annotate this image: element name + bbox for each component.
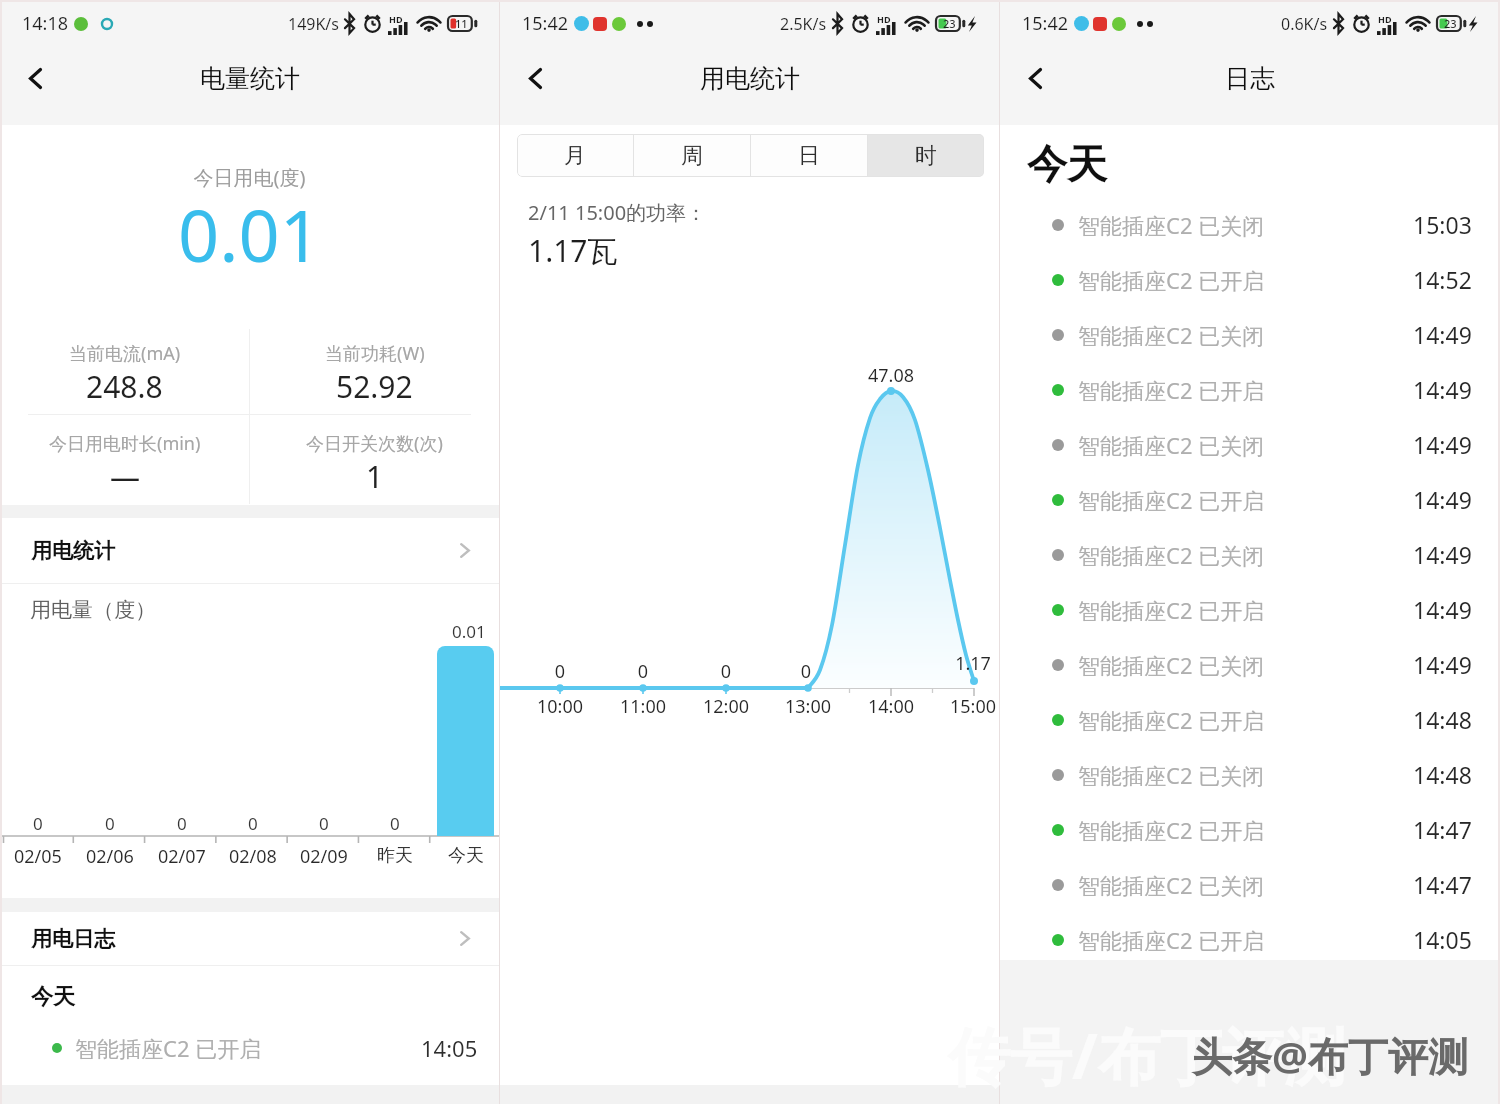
staticText: 0: [390, 812, 400, 835]
staticText: 15:03: [1413, 209, 1472, 240]
button[interactable]: 用电统计: [0, 518, 499, 583]
staticText: HD: [389, 13, 403, 25]
button[interactable]: 智能插座C2 已关闭: [1000, 417, 1500, 472]
staticText: 14:49: [1413, 649, 1472, 680]
button[interactable]: 智能插座C2 已开启: [1000, 912, 1500, 967]
staticText: 智能插座C2 已关闭: [1078, 210, 1265, 240]
staticText: 今日用电时长(min): [49, 431, 201, 456]
staticText: 今日用电(度): [0, 164, 499, 191]
staticText: 月: [564, 142, 586, 170]
staticText: 14:05: [421, 1033, 478, 1063]
button[interactable]: 用电日志: [0, 912, 499, 965]
staticText: 23: [1444, 16, 1457, 31]
button[interactable]: 智能插座C2 已关闭: [1000, 637, 1500, 692]
staticText: 智能插座C2 已关闭: [1078, 430, 1265, 460]
staticText: 今天: [1027, 139, 1107, 189]
button[interactable]: 智能插座C2 已开启: [1000, 802, 1500, 857]
staticText: 14:48: [1413, 704, 1472, 735]
staticText: 智能插座C2 已关闭: [1078, 540, 1265, 570]
staticText: 智能插座C2 已关闭: [1078, 760, 1265, 790]
staticText: 1.17: [923, 651, 1023, 676]
staticText: 12:00: [676, 694, 776, 719]
staticText: 0: [756, 659, 856, 684]
staticText: 02/06: [86, 844, 134, 869]
button[interactable]: 智能插座C2 已开启: [1000, 362, 1500, 417]
staticText: 14:49: [1413, 539, 1472, 570]
staticText: 昨天: [377, 844, 413, 867]
staticText: 14:49: [1413, 594, 1472, 625]
staticText: 1: [366, 456, 384, 497]
button[interactable]: 时: [868, 134, 984, 177]
staticText: 14:05: [1413, 924, 1472, 955]
button[interactable]: 智能插座C2 已开启: [1000, 252, 1500, 307]
button[interactable]: 智能插座C2 已关闭: [1000, 857, 1500, 912]
staticText: 今天: [31, 983, 75, 1011]
staticText: 23: [943, 16, 956, 31]
staticText: HD: [877, 13, 891, 25]
staticText: 2/11 15:00的功率：: [528, 199, 707, 226]
button[interactable]: Back: [1006, 49, 1064, 107]
staticText: 47.08: [841, 363, 941, 388]
staticText: 14:47: [1413, 814, 1472, 845]
staticText: 0: [33, 812, 43, 835]
staticText: 02/09: [300, 844, 348, 869]
staticText: 1.17瓦: [528, 230, 618, 271]
button[interactable]: 智能插座C2 已开启: [1000, 692, 1500, 747]
button[interactable]: Back: [6, 49, 64, 107]
button[interactable]: 智能插座C2 已关闭: [1000, 527, 1500, 582]
staticText: 智能插座C2 已开启: [1078, 485, 1265, 515]
staticText: 智能插座C2 已关闭: [1078, 320, 1265, 350]
staticText: 电量统计: [200, 63, 300, 94]
staticText: 14:49: [1413, 319, 1472, 350]
staticText: 02/08: [229, 844, 277, 869]
staticText: 15:00: [923, 694, 1023, 719]
staticText: 15:42: [522, 11, 569, 36]
staticText: 0: [248, 812, 258, 835]
staticText: 用电日志: [31, 926, 115, 952]
staticText: 149K/s: [288, 13, 339, 35]
button[interactable]: 智能插座C2 已开启: [1000, 472, 1500, 527]
staticText: 14:49: [1413, 374, 1472, 405]
staticText: 用电统计: [31, 538, 115, 564]
button[interactable]: 智能插座C2 已关闭: [1000, 747, 1500, 802]
staticText: 头条@布丁评测: [1192, 1028, 1468, 1083]
staticText: 0: [676, 659, 776, 684]
staticText: 0.01: [0, 185, 499, 283]
staticText: 智能插座C2 已开启: [1078, 375, 1265, 405]
staticText: 0: [593, 659, 693, 684]
staticText: 10:00: [510, 694, 610, 719]
staticText: 周: [681, 142, 703, 170]
staticText: 14:52: [1413, 264, 1472, 295]
button[interactable]: 智能插座C2 已关闭: [1000, 307, 1500, 362]
button[interactable]: 周: [634, 134, 750, 177]
staticText: 0.01: [452, 620, 486, 643]
staticText: 智能插座C2 已开启: [1078, 925, 1265, 955]
staticText: 传号/布丁评测: [948, 1013, 1346, 1098]
staticText: 用电统计: [700, 63, 800, 94]
staticText: 今天: [448, 844, 484, 867]
staticText: 11:00: [593, 694, 693, 719]
staticText: 13:00: [758, 694, 858, 719]
staticText: 0: [319, 812, 329, 835]
button[interactable]: 日: [751, 134, 867, 177]
staticText: 0: [177, 812, 187, 835]
staticText: 0: [510, 659, 610, 684]
staticText: 14:00: [841, 694, 941, 719]
staticText: 日志: [1225, 63, 1275, 94]
staticText: 02/05: [14, 844, 62, 869]
staticText: 今日开关次数(次): [306, 431, 443, 456]
staticText: 14:48: [1413, 759, 1472, 790]
staticText: 智能插座C2 已开启: [75, 1033, 262, 1063]
button[interactable]: 智能插座C2 已开启: [1000, 582, 1500, 637]
button[interactable]: 月: [517, 134, 633, 177]
staticText: 当前功耗(W): [325, 341, 425, 366]
staticText: 用电量（度）: [30, 597, 156, 623]
staticText: 0.6K/s: [1281, 13, 1328, 35]
button[interactable]: 智能插座C2 已开启: [0, 1026, 499, 1070]
button[interactable]: 智能插座C2 已关闭: [1000, 197, 1500, 252]
staticText: 当前电流(mA): [69, 341, 181, 366]
staticText: 智能插座C2 已关闭: [1078, 870, 1265, 900]
staticText: 日: [798, 142, 820, 170]
staticText: 0: [105, 812, 115, 835]
button[interactable]: Back: [506, 49, 564, 107]
